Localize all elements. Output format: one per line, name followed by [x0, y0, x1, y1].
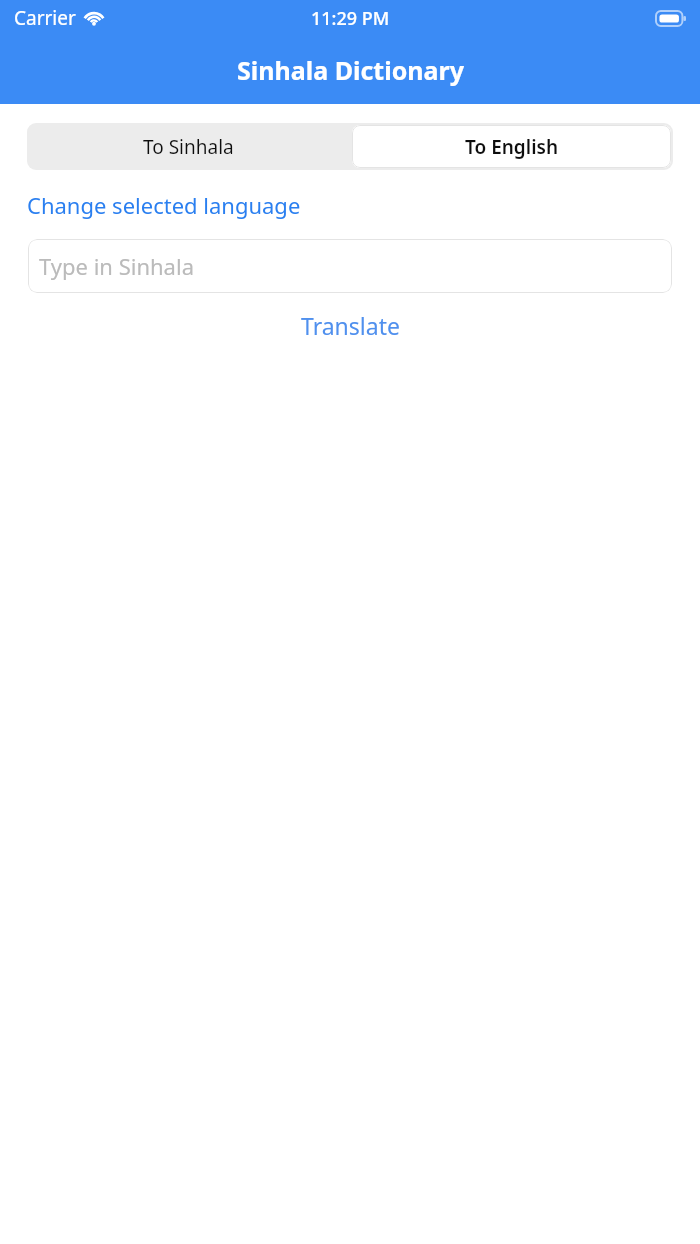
staticText: 11:29 PM — [311, 6, 390, 31]
button[interactable]: Type in Sinhala — [28, 239, 672, 293]
other: Battery — [656, 11, 686, 26]
staticText: Carrier — [14, 5, 76, 31]
staticText: Change selected language — [27, 190, 301, 220]
button[interactable]: Translate — [289, 306, 412, 345]
staticText: Type in Sinhala — [39, 251, 194, 281]
staticText: To Sinhala — [143, 134, 234, 160]
staticText: Translate — [301, 310, 400, 341]
button[interactable]: To Sinhala — [29, 125, 348, 168]
staticText: Sinhala Dictionary — [237, 53, 464, 87]
button[interactable]: To English — [352, 125, 671, 168]
other: Wi-Fi — [83, 10, 105, 26]
button[interactable]: Change selected language — [27, 190, 301, 220]
staticText: To English — [465, 134, 559, 160]
